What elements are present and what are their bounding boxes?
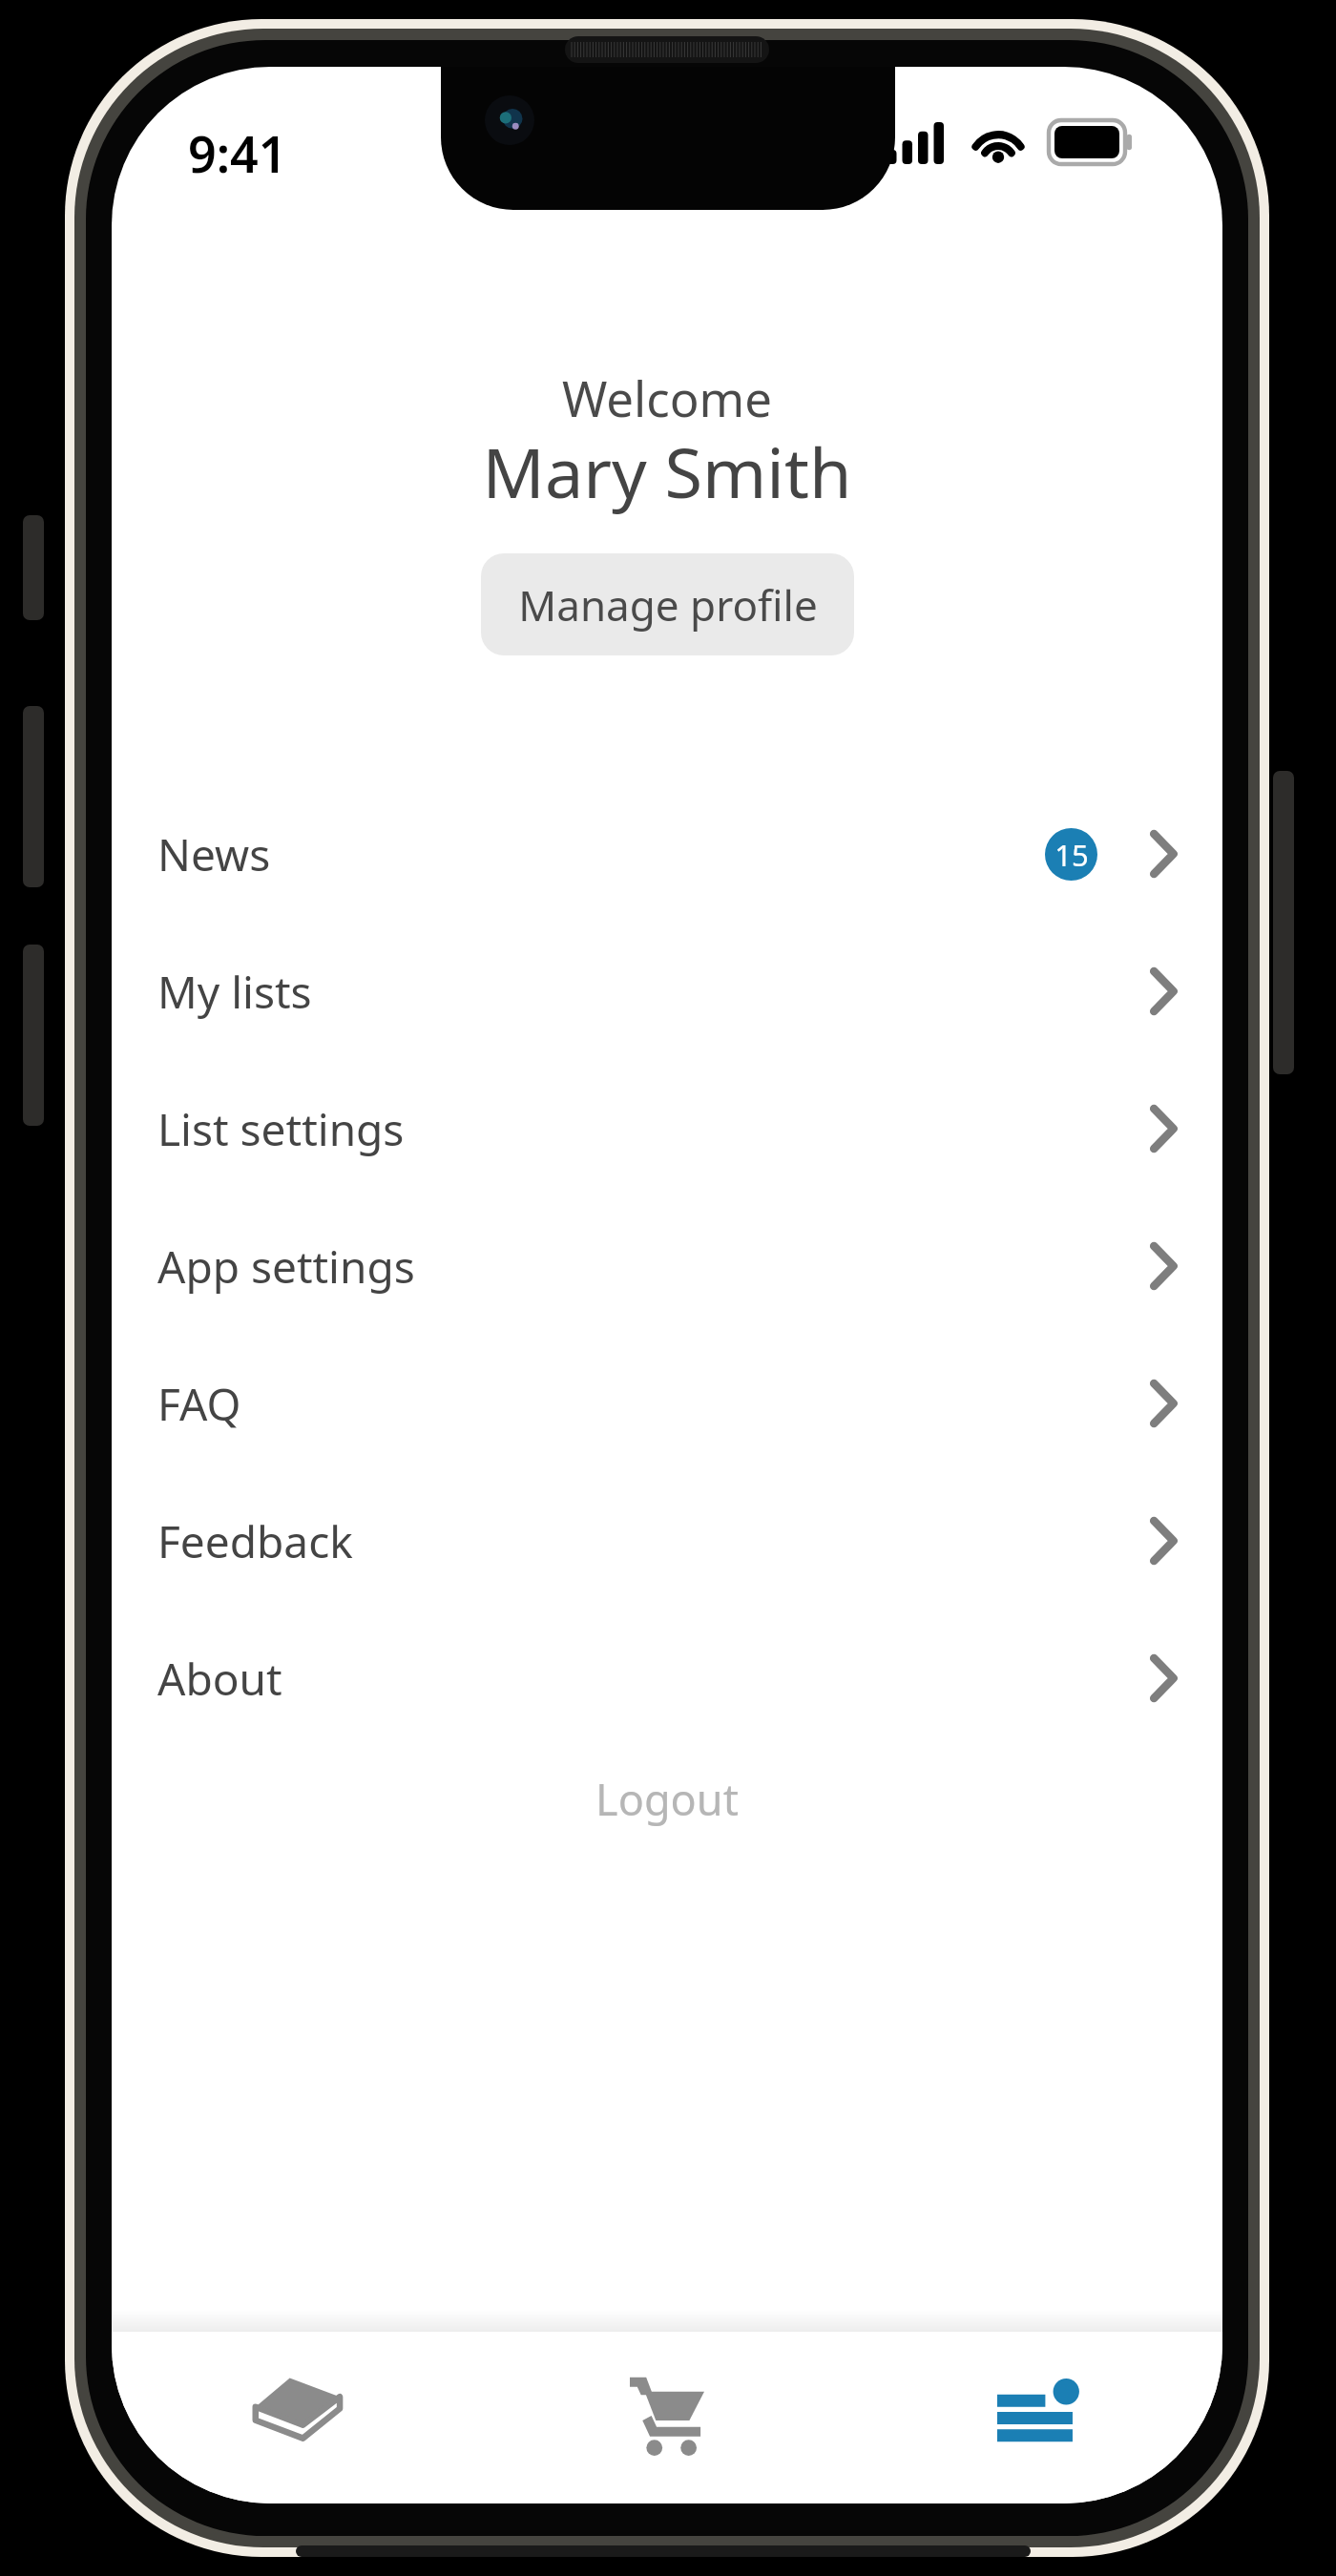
button[interactable]: Books xyxy=(112,2332,482,2494)
button[interactable]: About xyxy=(112,1610,1222,1747)
staticText: About xyxy=(157,1649,282,1709)
button[interactable]: My lists xyxy=(112,923,1222,1060)
staticText: Manage profile xyxy=(518,576,818,634)
staticText: List settings xyxy=(157,1099,405,1159)
button[interactable]: Menu xyxy=(852,2332,1222,2494)
button[interactable]: List settings xyxy=(112,1060,1222,1197)
staticText: FAQ xyxy=(157,1374,241,1434)
staticText: 15 xyxy=(1054,835,1089,875)
staticText: Logout xyxy=(595,1770,739,1828)
button[interactable]: Logout xyxy=(476,1755,858,1841)
staticText: Welcome xyxy=(112,364,1222,430)
staticText: Mary Smith xyxy=(112,425,1222,518)
button[interactable]: Feedback xyxy=(112,1472,1222,1610)
button[interactable]: App settings xyxy=(112,1197,1222,1335)
staticText: App settings xyxy=(157,1236,415,1297)
staticText: 9:41 xyxy=(188,119,287,187)
button[interactable]: Cart xyxy=(482,2332,852,2494)
staticText: Feedback xyxy=(157,1511,353,1571)
button[interactable]: News xyxy=(112,785,1222,923)
staticText: My lists xyxy=(157,962,312,1022)
button[interactable]: Manage profile xyxy=(481,553,854,655)
staticText: News xyxy=(157,824,271,884)
button[interactable]: FAQ xyxy=(112,1335,1222,1472)
